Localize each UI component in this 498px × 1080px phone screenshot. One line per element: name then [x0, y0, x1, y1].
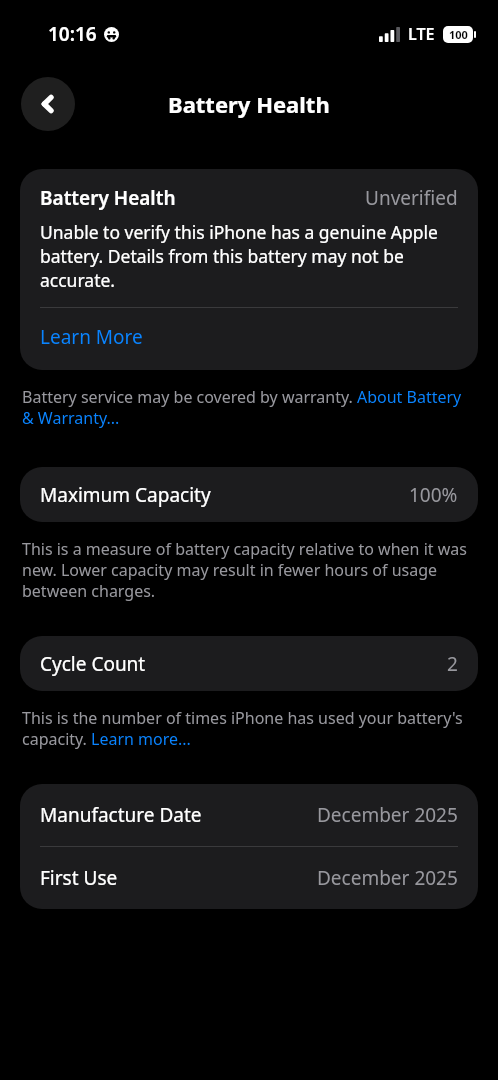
- staticText: Battery Health: [168, 89, 330, 119]
- button[interactable]: Back: [21, 77, 75, 131]
- staticText: Battery Health: [40, 185, 176, 211]
- button[interactable]: Learn More: [20, 318, 478, 370]
- button[interactable]: Maximum Capacity: [20, 467, 478, 522]
- staticText: December 2025: [317, 802, 458, 828]
- staticText: Battery service may be covered by warran…: [22, 386, 476, 429]
- staticText: Manufacture Date: [40, 802, 202, 828]
- staticText: First Use: [40, 865, 118, 891]
- staticText: Unverified: [365, 185, 458, 211]
- staticText: This is the number of times iPhone has u…: [22, 707, 476, 750]
- staticText: LTE: [408, 23, 435, 45]
- staticText: Cycle Count: [40, 651, 146, 677]
- button[interactable]: Cycle Count: [20, 636, 478, 691]
- staticText: Learn More: [40, 324, 143, 350]
- staticText: 2: [447, 651, 458, 677]
- staticText: December 2025: [317, 865, 458, 891]
- staticText: Unable to verify this iPhone has a genui…: [40, 220, 458, 292]
- staticText: Maximum Capacity: [40, 482, 211, 508]
- button[interactable]: First Use: [20, 847, 478, 909]
- staticText: 10:16: [48, 21, 97, 47]
- staticText: 100: [449, 27, 468, 42]
- staticText: 100%: [409, 482, 458, 508]
- button[interactable]: Manufacture Date: [20, 784, 478, 846]
- staticText: This is a measure of battery capacity re…: [22, 538, 476, 602]
